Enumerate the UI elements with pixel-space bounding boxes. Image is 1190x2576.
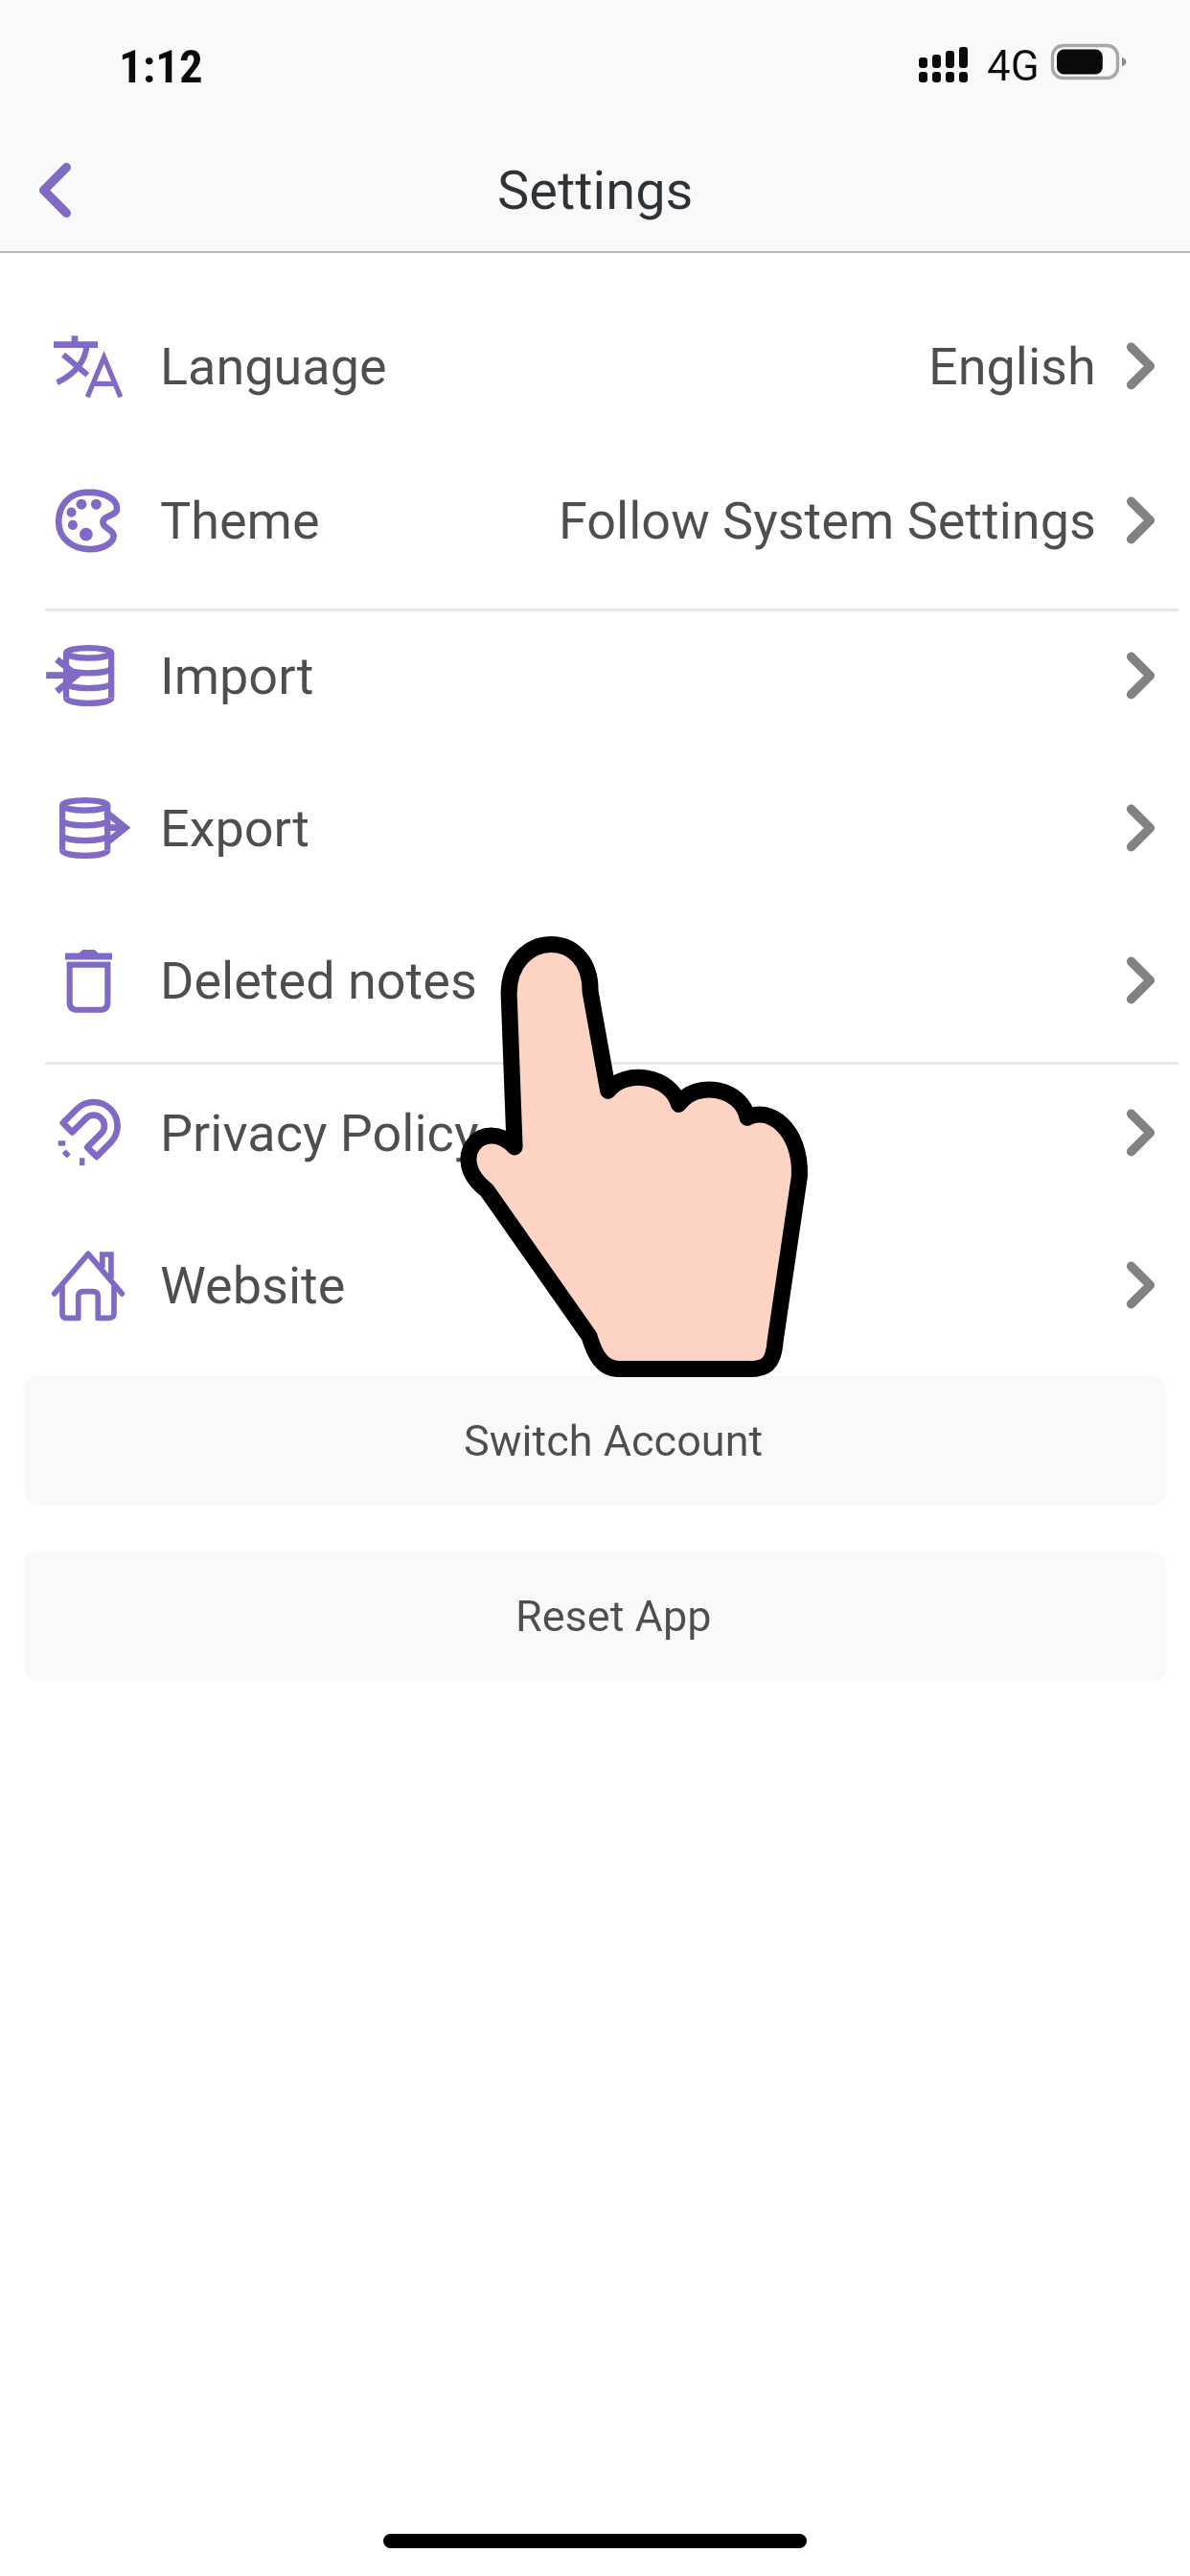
staticText: Switch Account — [464, 1415, 764, 1466]
staticText: 4G — [987, 41, 1040, 91]
staticText: Deleted notes — [160, 951, 477, 1011]
button[interactable]: Theme — [0, 444, 1190, 597]
staticText: English — [928, 336, 1096, 397]
staticText: Website — [160, 1255, 346, 1316]
staticText: Language — [160, 336, 387, 397]
staticText: Export — [160, 798, 309, 859]
staticText: Reset App — [515, 1591, 712, 1642]
button[interactable]: Language — [0, 289, 1190, 443]
button[interactable]: Back — [1, 136, 108, 243]
staticText: Settings — [497, 159, 694, 222]
staticText: Import — [160, 646, 314, 706]
staticText: Follow System Settings — [559, 491, 1096, 551]
button[interactable]: Export — [0, 751, 1190, 905]
button[interactable]: Reset App — [24, 1552, 1166, 1681]
button[interactable]: Import — [0, 599, 1190, 752]
button[interactable]: Deleted notes — [0, 904, 1190, 1057]
staticText: 1:12 — [119, 39, 203, 94]
staticText: Theme — [160, 491, 320, 551]
staticText: Privacy Policy — [160, 1103, 479, 1163]
button[interactable]: Website — [0, 1208, 1190, 1362]
button[interactable]: Switch Account — [24, 1376, 1166, 1506]
button[interactable]: Privacy Policy — [0, 1056, 1190, 1209]
